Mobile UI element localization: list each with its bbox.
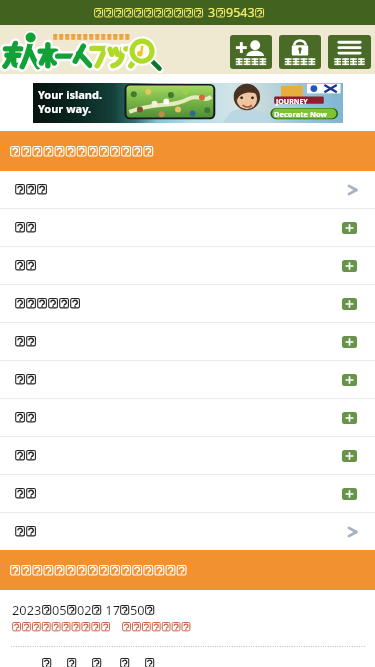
other: Open [348, 527, 357, 537]
button[interactable]: 2023 [0, 647, 375, 667]
button[interactable]: Expand [0, 437, 375, 474]
button[interactable] [0, 131, 375, 171]
button[interactable]: Open [0, 513, 375, 550]
button[interactable]: Expand [0, 323, 375, 360]
button[interactable]: Expand [342, 222, 357, 234]
staticText: Your way. [38, 101, 92, 116]
button[interactable]: Expand [342, 260, 357, 272]
button[interactable]: Expand [342, 412, 357, 424]
button[interactable]: Expand [342, 298, 357, 310]
button[interactable]: Expand [0, 209, 375, 246]
staticText: Decorate Now [274, 109, 327, 119]
button[interactable]: 2023 [0, 590, 375, 646]
staticText: 9543 [226, 4, 255, 21]
staticText: JOURNEY [276, 97, 308, 107]
staticText: 3 [208, 4, 216, 21]
button[interactable]: ログイン [279, 35, 321, 69]
other: Open [348, 185, 357, 195]
button[interactable]: Advertisement [33, 83, 343, 123]
button[interactable]: 老人ホームマップ [4, 32, 160, 70]
button[interactable]: Expand [342, 488, 357, 500]
staticText: 50 [130, 601, 145, 618]
button[interactable]: Expand [342, 374, 357, 386]
button[interactable]: Expand [342, 336, 357, 348]
button[interactable]: Expand [0, 285, 375, 322]
button[interactable]: Expand [342, 450, 357, 462]
staticText: 2023 [12, 601, 42, 618]
staticText: 17 [102, 601, 120, 618]
button[interactable]: Expand [0, 247, 375, 284]
staticText: 02 [77, 601, 92, 618]
button[interactable]: Expand [0, 399, 375, 436]
button[interactable]: メニュー [328, 35, 371, 69]
button[interactable]: 会員登録 [230, 35, 272, 69]
staticText: Your island. [38, 87, 103, 102]
button[interactable]: Expand [0, 361, 375, 398]
button[interactable]: Expand [0, 475, 375, 512]
staticText: 05 [52, 601, 67, 618]
button[interactable]: Open [0, 171, 375, 208]
button[interactable] [0, 550, 375, 590]
